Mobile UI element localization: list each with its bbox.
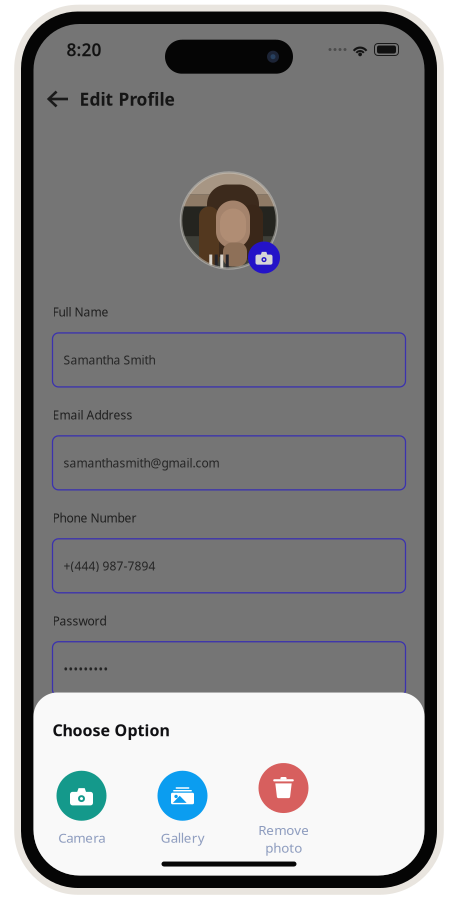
staticText: Email Address: [52, 407, 132, 423]
button[interactable]: Gallery: [140, 771, 224, 857]
staticText: samanthasmith@gmail.com: [63, 455, 219, 471]
staticText: Edit Profile: [79, 87, 174, 110]
staticText: +(444) 987-7894: [63, 558, 155, 574]
staticText: Remove photo: [258, 821, 309, 856]
staticText: •••••••••: [63, 661, 108, 677]
staticText: Full Name: [52, 304, 108, 320]
button[interactable]: Camera: [39, 771, 123, 857]
staticText: Gallery: [160, 829, 204, 846]
button[interactable]: Change profile photo: [248, 241, 280, 273]
staticText: Samantha Smith: [63, 352, 155, 368]
staticText: Phone Number: [52, 510, 136, 526]
staticText: Password: [52, 613, 106, 629]
staticText: Camera: [58, 829, 105, 846]
staticText: 8:20: [66, 38, 101, 61]
button[interactable]: Edit Profile: [33, 68, 424, 118]
staticText: Choose Option: [52, 719, 169, 741]
button[interactable]: Remove photo: [241, 771, 325, 857]
